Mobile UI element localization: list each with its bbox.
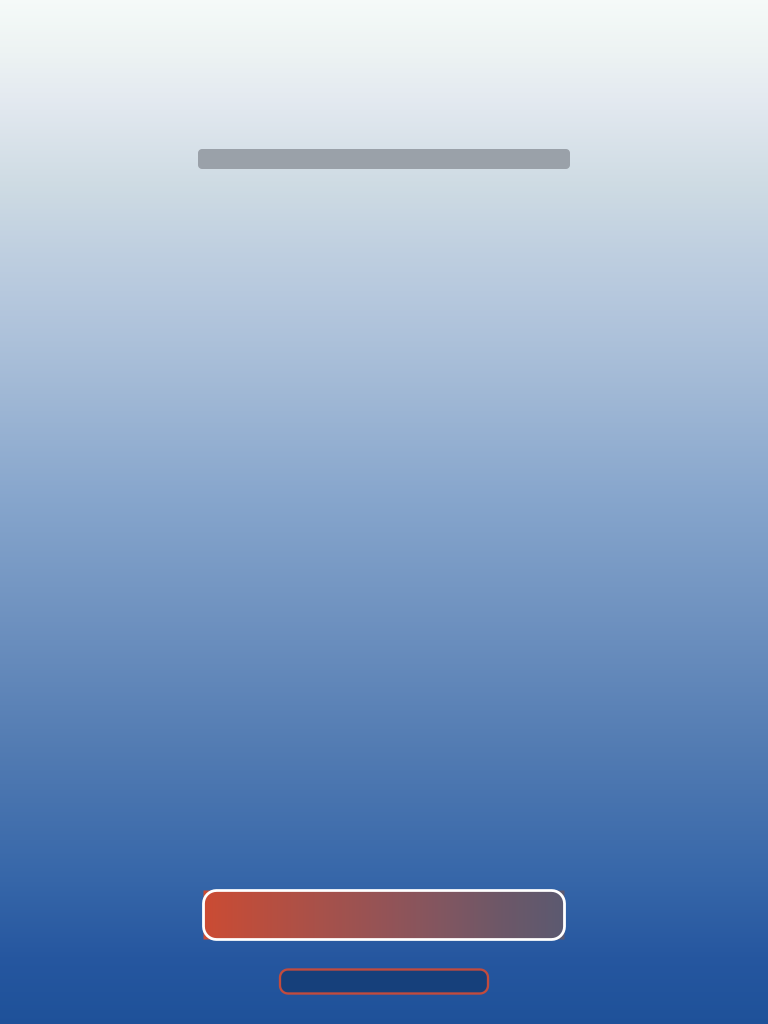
button[interactable]: Secondary action [280, 969, 488, 993]
button[interactable]: Continue [203, 890, 564, 939]
